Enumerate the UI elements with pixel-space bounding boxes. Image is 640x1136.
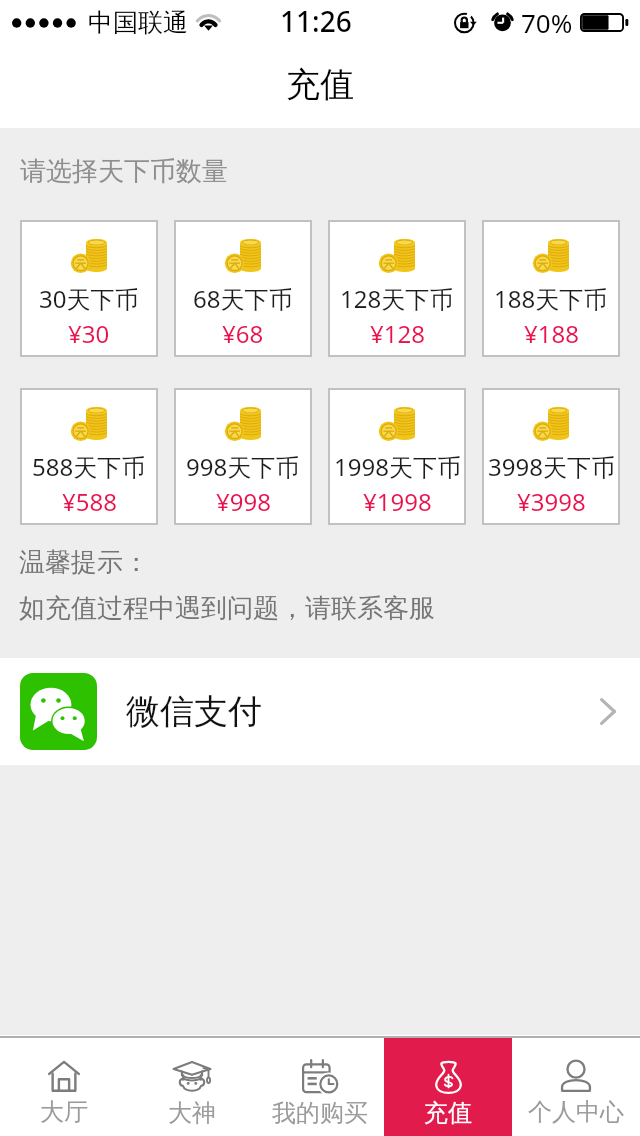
staticText: 70%	[521, 5, 573, 40]
button[interactable]: 3998天下币	[482, 388, 620, 525]
staticText: 128天下币	[340, 282, 454, 315]
button[interactable]: 充值	[384, 1038, 512, 1136]
button[interactable]: 128天下币	[328, 220, 466, 357]
staticText: 请选择天下币数量	[20, 155, 228, 188]
button[interactable]: 个人中心	[512, 1038, 640, 1136]
staticText: ¥3998	[517, 485, 586, 518]
button[interactable]: 998天下币	[174, 388, 312, 525]
staticText: 微信支付	[126, 690, 262, 733]
staticText: 3998天下币	[488, 450, 615, 483]
staticText: 1998天下币	[334, 450, 461, 483]
staticText: 588天下币	[32, 450, 146, 483]
staticText: ¥128	[370, 317, 425, 350]
staticText: 中国联通	[88, 7, 188, 38]
staticText: 188天下币	[494, 282, 608, 315]
staticText: 充值	[286, 63, 354, 106]
staticText: 温馨提示：	[19, 546, 149, 579]
button[interactable]: 188天下币	[482, 220, 620, 357]
staticText: ¥68	[222, 317, 264, 350]
other: Open WeChat Pay	[600, 698, 616, 725]
staticText: 68天下币	[193, 282, 293, 315]
staticText: 充值	[424, 1098, 472, 1128]
staticText: 我的购买	[272, 1098, 368, 1128]
button[interactable]: 大神	[128, 1038, 256, 1136]
staticText: ¥1998	[363, 485, 432, 518]
staticText: 个人中心	[528, 1097, 624, 1127]
button[interactable]: 30天下币	[20, 220, 158, 357]
staticText: 大神	[168, 1098, 216, 1128]
staticText: ¥188	[524, 317, 579, 350]
button[interactable]: 微信支付	[0, 658, 640, 765]
staticText: 大厅	[40, 1097, 88, 1127]
staticText: ¥588	[62, 485, 117, 518]
button[interactable]: 1998天下币	[328, 388, 466, 525]
staticText: 30天下币	[39, 282, 139, 315]
staticText: 998天下币	[186, 450, 300, 483]
staticText: 如充值过程中遇到问题，请联系客服	[19, 592, 435, 625]
staticText: ¥998	[216, 485, 271, 518]
button[interactable]: 588天下币	[20, 388, 158, 525]
button[interactable]: 大厅	[0, 1038, 128, 1136]
staticText: 11:26	[280, 2, 352, 40]
staticText: ¥30	[68, 317, 110, 350]
button[interactable]: 68天下币	[174, 220, 312, 357]
button[interactable]: 我的购买	[256, 1038, 384, 1136]
